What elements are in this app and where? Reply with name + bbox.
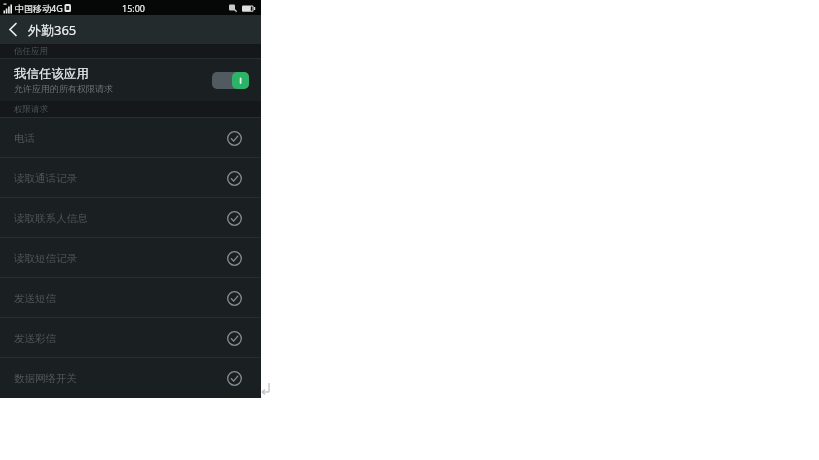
staticText: 信任应用 [14,46,48,57]
staticText: 我信任该应用 [14,66,89,82]
button[interactable]: 读取通话记录 [0,158,261,198]
staticText: 电话 [14,132,35,145]
staticText: 数据网络开关 [14,372,77,385]
button[interactable] [212,72,249,89]
button[interactable]: 数据网络开关 [0,358,261,398]
button[interactable]: 读取短信记录 [0,238,261,278]
staticText: 读取通话记录 [14,172,77,185]
staticText: 读取联系人信息 [14,212,88,225]
staticText: 发送短信 [14,292,56,305]
staticText: 外勤365 [28,21,77,39]
staticText: 允许应用的所有权限请求 [14,83,113,94]
staticText: 读取短信记录 [14,252,77,265]
button[interactable]: 发送短信 [0,278,261,318]
button[interactable]: 我信任该应用 [0,59,261,101]
button[interactable]: 电话 [0,118,261,158]
staticText: 15:00 [122,2,146,14]
staticText: 权限请求 [14,104,48,115]
staticText: 发送彩信 [14,332,56,345]
button[interactable]: 外勤365 [0,15,261,44]
button[interactable]: 读取联系人信息 [0,198,261,238]
staticText: 中国移动4G [15,2,63,14]
button[interactable]: 发送彩信 [0,318,261,358]
